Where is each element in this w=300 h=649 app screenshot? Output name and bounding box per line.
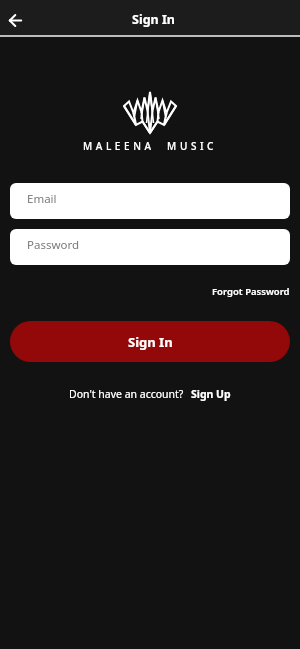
staticText: Sign In — [132, 11, 175, 28]
staticText: Don't have an account? — [69, 387, 184, 401]
button[interactable]: Forgot Password — [212, 285, 290, 298]
button[interactable]: Sign In — [10, 321, 290, 362]
button[interactable] — [2, 7, 28, 33]
button[interactable]: Sign Up — [191, 387, 231, 401]
staticText: MALEENA MUSIC — [83, 139, 218, 153]
button[interactable]: Email — [10, 183, 290, 219]
staticText: Sign In — [128, 333, 173, 351]
staticText: Password — [27, 237, 80, 253]
staticText: Email — [27, 191, 57, 207]
button[interactable]: Password — [10, 229, 290, 265]
